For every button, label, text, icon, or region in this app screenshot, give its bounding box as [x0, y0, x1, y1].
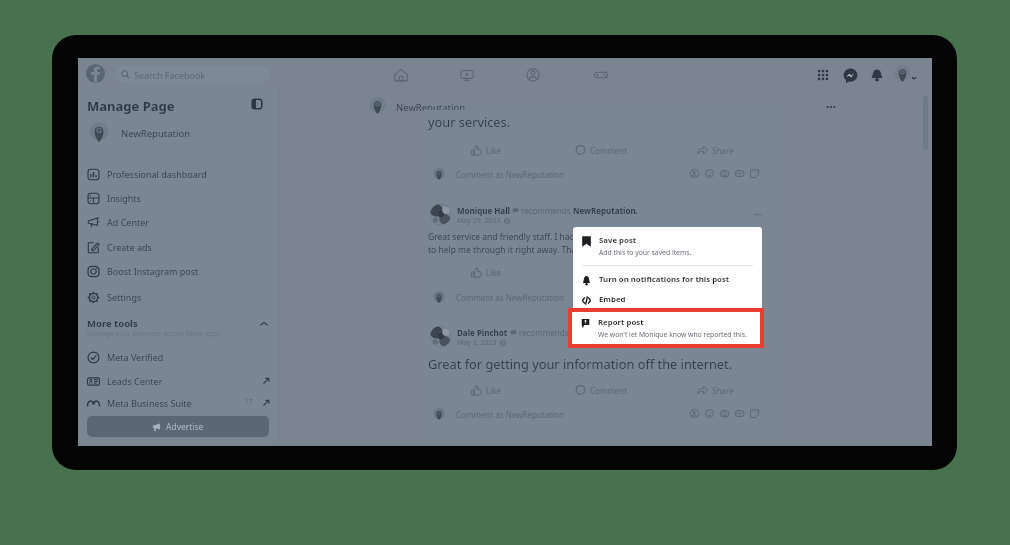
button[interactable]: Collapse sidebar: [250, 97, 264, 111]
button[interactable]: Facebook: [86, 64, 105, 83]
staticText: Dale Pinchot: [457, 327, 508, 338]
button[interactable]: Share: [697, 264, 734, 281]
button[interactable]: Turn on notifications for this post: [573, 271, 762, 290]
button[interactable]: Sticker: [748, 167, 761, 180]
button[interactable]: Share: [697, 142, 734, 159]
staticText: May 29, 2023: [457, 216, 501, 226]
staticText: Search Facebook: [134, 69, 206, 81]
button[interactable]: GIF: [733, 407, 746, 420]
staticText: Comment: [590, 145, 628, 156]
staticText: Like: [486, 267, 502, 278]
staticText: Insights: [107, 192, 141, 204]
button[interactable]: Avatar sticker: [688, 167, 701, 180]
staticText: Share: [712, 385, 734, 396]
button[interactable]: Groups: [522, 64, 544, 86]
staticText: Create ads: [107, 241, 152, 253]
button[interactable]: Search Facebook: [116, 66, 270, 83]
staticText: We won't let Monique know who reported t…: [598, 330, 747, 339]
staticText: Comment: [590, 267, 628, 278]
staticText: Comment: [590, 385, 628, 396]
staticText: NewReputation.: [573, 205, 638, 216]
button[interactable]: Meta Business Suite: [82, 392, 276, 414]
button[interactable]: Notifications: [868, 66, 886, 84]
button[interactable]: Meta Verified: [82, 346, 276, 368]
staticText: Great service and friendly staff. I had …: [428, 231, 582, 243]
staticText: Settings: [107, 291, 142, 303]
staticText: Save post: [599, 235, 637, 246]
staticText: Advertise: [166, 421, 204, 433]
button[interactable]: Advertise: [87, 416, 269, 437]
button[interactable]: GIF: [733, 167, 746, 180]
staticText: Turn on notifications for this post: [599, 274, 730, 285]
staticText: NewReputation: [121, 127, 191, 140]
staticText: Share: [712, 267, 734, 278]
button[interactable]: Comment: [575, 382, 628, 399]
button[interactable]: Video: [456, 64, 478, 86]
staticText: Boost Instagram post: [107, 265, 199, 277]
staticText: Embed: [599, 294, 626, 305]
staticText: Comment as NewReputation: [456, 169, 564, 180]
button[interactable]: Menu: [814, 66, 832, 84]
button[interactable]: Settings: [82, 286, 276, 308]
staticText: Ad Center: [107, 216, 149, 228]
staticText: Like: [486, 145, 502, 156]
staticText: Monique Hall: [457, 205, 510, 216]
staticText: recommends: [521, 205, 571, 216]
button[interactable]: Camera: [718, 167, 731, 180]
button[interactable]: Emoji: [703, 167, 716, 180]
staticText: Share: [712, 145, 734, 156]
staticText: Great for getting your information off t…: [428, 355, 733, 372]
staticText: recommends: [519, 327, 569, 338]
button[interactable]: More options: [822, 98, 840, 116]
staticText: Add this to your saved items.: [599, 248, 692, 257]
staticText: 17: [245, 397, 253, 406]
button[interactable]: Like: [471, 264, 502, 281]
button[interactable]: Leads Center: [82, 370, 276, 392]
staticText: Meta Verified: [107, 351, 164, 363]
button[interactable]: Insights: [82, 187, 276, 209]
staticText: Meta Business Suite: [107, 397, 192, 409]
staticText: Comment as NewReputation: [456, 292, 564, 303]
button[interactable]: Comment: [575, 142, 628, 159]
staticText: More tools: [87, 317, 138, 330]
button[interactable]: Sticker: [748, 407, 761, 420]
button[interactable]: Gaming: [590, 64, 612, 86]
staticText: Professional dashboard: [107, 168, 207, 180]
button[interactable]: Report post: [572, 314, 760, 342]
staticText: your services.: [428, 113, 511, 130]
button[interactable]: Messenger: [841, 66, 859, 84]
button[interactable]: Save post: [573, 232, 762, 260]
staticText: Comment as NewReputation: [456, 409, 564, 420]
button[interactable]: Ad Center: [82, 211, 276, 233]
staticText: to help me through it right away. Thank: [428, 244, 586, 256]
button[interactable]: Create ads: [82, 236, 276, 258]
button[interactable]: Collapse More tools: [259, 319, 269, 329]
staticText: May 2, 2023: [457, 338, 497, 348]
button[interactable]: Embed: [573, 291, 762, 310]
button[interactable]: Like: [471, 142, 502, 159]
button[interactable]: Share: [697, 382, 734, 399]
button[interactable]: Professional dashboard: [82, 163, 276, 185]
staticText: Manage Page: [87, 97, 175, 115]
staticText: Manage your business across Meta apps: [87, 329, 221, 339]
button[interactable]: Like: [471, 382, 502, 399]
staticText: NewReputation: [396, 101, 466, 114]
button[interactable]: Comment: [575, 264, 628, 281]
button[interactable]: Boost Instagram post: [82, 260, 276, 282]
staticText: Report post: [598, 317, 644, 328]
staticText: Like: [486, 385, 502, 396]
button[interactable]: Camera: [718, 407, 731, 420]
staticText: Leads Center: [107, 375, 163, 387]
button[interactable]: Avatar sticker: [688, 407, 701, 420]
button[interactable]: Emoji: [703, 407, 716, 420]
button[interactable]: Your profile: [894, 65, 911, 82]
button[interactable]: Home: [390, 64, 412, 86]
button[interactable]: Post options: [750, 206, 766, 222]
